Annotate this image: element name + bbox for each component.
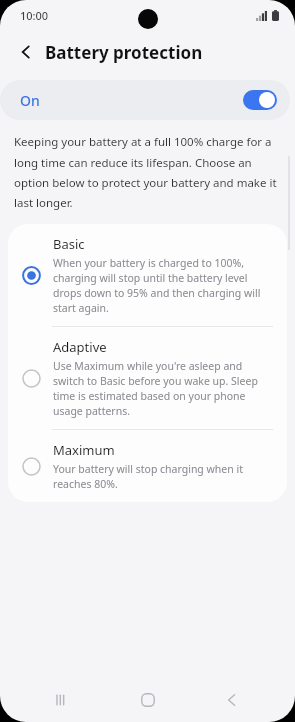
staticText: 10:00 [20,8,49,23]
staticText: Use Maximum while you're asleep and swit… [53,359,273,418]
button[interactable]: Maximum [8,430,287,502]
staticText: Maximum [53,441,115,459]
staticText: When your battery is charged to 100%, ch… [53,256,273,315]
button[interactable]: Back [10,36,42,68]
staticText: Basic [53,235,85,253]
button[interactable]: Recent apps [41,678,85,722]
button[interactable]: Back [210,678,254,722]
staticText: Adaptive [53,338,107,356]
button[interactable]: On [0,80,290,120]
button[interactable]: Home [126,678,170,722]
staticText: Keeping your battery at a full 100% char… [14,134,281,210]
staticText: On [20,91,40,110]
staticText: Battery protection [45,41,203,64]
staticText: Your battery will stop charging when it … [53,462,273,491]
button[interactable]: Adaptive [8,327,287,429]
button[interactable]: Battery protection toggle [243,90,277,110]
button[interactable]: Basic [8,224,287,326]
